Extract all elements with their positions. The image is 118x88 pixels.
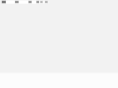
button[interactable]: Search <box>36 0 41 5</box>
button[interactable]: Navigate up <box>0 0 8 5</box>
button[interactable] <box>8 0 36 5</box>
button[interactable]: More options <box>41 0 46 5</box>
